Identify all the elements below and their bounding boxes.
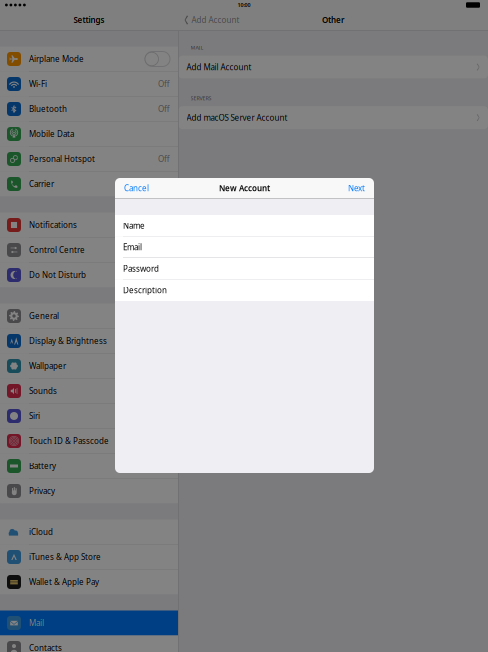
- staticText: Contacts: [29, 643, 62, 652]
- button[interactable]: Cancel: [115, 183, 149, 193]
- button[interactable]: Bluetooth: [0, 96, 178, 121]
- staticText: Siri: [29, 411, 40, 421]
- staticText: Bluetooth: [29, 104, 67, 114]
- button[interactable]: Add Mail Account: [178, 56, 488, 79]
- button[interactable]: General: [0, 303, 178, 328]
- staticText: Battery: [29, 461, 56, 471]
- button[interactable]: iCloud: [0, 519, 178, 544]
- button[interactable]: Battery: [0, 453, 178, 478]
- staticText: Airplane Mode: [29, 54, 84, 64]
- staticText: Next: [348, 183, 365, 193]
- button[interactable]: Display & Brightness: [0, 328, 178, 353]
- button[interactable]: Mobile Data: [0, 121, 178, 146]
- button[interactable]: Do Not Disturb: [0, 262, 178, 287]
- staticText: Settings: [73, 15, 104, 25]
- button[interactable]: Notifications: [0, 212, 178, 237]
- staticText: Other: [322, 15, 344, 25]
- staticText: Off: [158, 104, 170, 114]
- staticText: Description: [123, 285, 167, 295]
- staticText: Add macOS Server Account: [186, 112, 287, 123]
- staticText: Privacy: [29, 486, 55, 496]
- button[interactable]: Mail: [0, 610, 178, 635]
- button[interactable]: Sounds: [0, 378, 178, 403]
- staticText: Off: [158, 154, 170, 164]
- button[interactable]: Next: [348, 183, 374, 193]
- staticText: Sounds: [29, 386, 57, 396]
- button[interactable]: Email: [115, 236, 374, 258]
- staticText: Touch ID & Passcode: [29, 436, 109, 446]
- staticText: Off: [158, 79, 170, 89]
- staticText: MAIL: [190, 44, 203, 51]
- staticText: Email: [123, 242, 142, 252]
- staticText: Display & Brightness: [29, 336, 107, 346]
- staticText: General: [29, 311, 59, 321]
- staticText: iTunes & App Store: [29, 552, 101, 562]
- button[interactable]: Control Centre: [0, 237, 178, 262]
- button[interactable]: Siri: [0, 403, 178, 428]
- button[interactable]: Airplane Mode: [0, 46, 178, 71]
- button[interactable]: Add macOS Server Account: [178, 106, 488, 129]
- button[interactable]: Wi-Fi: [0, 71, 178, 96]
- staticText: SERVERS: [190, 95, 211, 102]
- staticText: Name: [123, 220, 145, 231]
- staticText: Mail: [29, 618, 44, 628]
- button[interactable]: Add Account: [178, 10, 239, 30]
- button[interactable]: Personal Hotspot: [0, 146, 178, 171]
- button[interactable]: Touch ID & Passcode: [0, 428, 178, 453]
- button[interactable]: Name: [115, 215, 374, 236]
- staticText: Wi-Fi: [29, 79, 47, 89]
- button[interactable]: Privacy: [0, 478, 178, 503]
- staticText: Add Mail Account: [186, 62, 251, 72]
- staticText: New Account: [219, 183, 270, 193]
- button[interactable]: Wallpaper: [0, 353, 178, 378]
- button[interactable]: Password: [115, 258, 374, 279]
- button[interactable]: Carrier: [0, 171, 178, 196]
- staticText: Carrier: [29, 179, 54, 189]
- staticText: iCloud: [29, 527, 53, 537]
- button[interactable]: Description: [115, 279, 374, 301]
- staticText: Wallpaper: [29, 361, 66, 371]
- staticText: Mobile Data: [29, 129, 74, 139]
- staticText: Add Account: [191, 15, 239, 25]
- staticText: Personal Hotspot: [29, 154, 95, 164]
- staticText: Password: [123, 263, 159, 274]
- button[interactable]: iTunes & App Store: [0, 544, 178, 569]
- button[interactable]: Contacts: [0, 635, 178, 652]
- staticText: Cancel: [124, 183, 149, 193]
- staticText: Do Not Disturb: [29, 270, 86, 280]
- staticText: Notifications: [29, 220, 77, 230]
- staticText: Control Centre: [29, 245, 85, 255]
- button[interactable]: Wallet & Apple Pay: [0, 569, 178, 594]
- staticText: Wallet & Apple Pay: [29, 577, 99, 587]
- staticText: 10:00: [237, 1, 250, 9]
